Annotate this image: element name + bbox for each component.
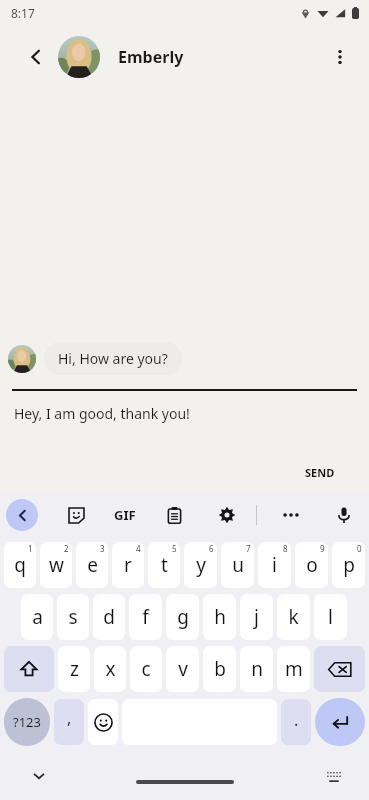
- staticText: n: [251, 656, 263, 682]
- button[interactable]: l: [314, 594, 347, 640]
- staticText: c: [141, 656, 151, 682]
- staticText: f: [142, 604, 149, 630]
- staticText: k: [288, 604, 299, 630]
- staticText: j: [254, 604, 259, 630]
- staticText: r: [124, 552, 132, 578]
- staticText: w: [49, 552, 64, 578]
- button[interactable]: z: [58, 646, 90, 692]
- button[interactable]: n: [240, 646, 273, 692]
- button[interactable]: p: [332, 542, 365, 588]
- staticText: 8: [283, 543, 288, 554]
- staticText: 7: [246, 543, 251, 554]
- button[interactable]: Back: [6, 499, 38, 531]
- button[interactable]: b: [203, 646, 236, 692]
- staticText: t: [161, 552, 168, 578]
- button[interactable]: More: [276, 500, 306, 530]
- button[interactable]: o: [295, 542, 328, 588]
- staticText: s: [68, 604, 78, 630]
- staticText: 2: [64, 543, 69, 554]
- staticText: 4: [136, 543, 141, 554]
- staticText: h: [214, 604, 226, 630]
- button[interactable]: Back: [22, 43, 50, 71]
- button[interactable]: k: [277, 594, 310, 640]
- staticText: 3: [100, 543, 105, 554]
- staticText: 9: [320, 543, 325, 554]
- staticText: z: [70, 656, 79, 682]
- staticText: o: [306, 552, 318, 578]
- staticText: l: [328, 604, 333, 630]
- staticText: b: [214, 656, 226, 682]
- button[interactable]: Change keyboard: [321, 763, 347, 789]
- button[interactable]: Backspace: [314, 646, 365, 692]
- button[interactable]: c: [130, 646, 162, 692]
- button[interactable]: w: [40, 542, 72, 588]
- staticText: y: [196, 552, 206, 578]
- button[interactable]: a: [21, 594, 53, 640]
- button[interactable]: Voice input: [329, 500, 359, 530]
- button[interactable]: h: [203, 594, 236, 640]
- button[interactable]: r: [112, 542, 144, 588]
- staticText: 1: [28, 543, 33, 554]
- button[interactable]: d: [93, 594, 125, 640]
- button[interactable]: Hey, I am good, thank you!: [14, 404, 190, 423]
- button[interactable]: .: [281, 699, 311, 745]
- staticText: e: [87, 552, 98, 578]
- button[interactable]: g: [166, 594, 199, 640]
- button[interactable]: Emberly: [118, 46, 184, 68]
- staticText: u: [232, 552, 244, 578]
- staticText: i: [272, 552, 277, 578]
- button[interactable]: e: [76, 542, 108, 588]
- staticText: 8:17: [11, 5, 35, 21]
- button[interactable]: SEND: [299, 461, 341, 484]
- staticText: ?123: [13, 713, 41, 731]
- button[interactable]: q: [4, 542, 36, 588]
- staticText: m: [285, 656, 303, 682]
- button[interactable]: t: [148, 542, 180, 588]
- button[interactable]: Enter: [315, 698, 365, 746]
- staticText: 5: [172, 543, 177, 554]
- button[interactable]: ?123: [4, 698, 50, 746]
- button[interactable]: Stickers: [61, 500, 91, 530]
- button[interactable]: x: [94, 646, 126, 692]
- button[interactable]: s: [57, 594, 89, 640]
- button[interactable]: m: [277, 646, 310, 692]
- staticText: v: [178, 656, 188, 682]
- staticText: d: [103, 604, 115, 630]
- staticText: 6: [209, 543, 214, 554]
- button[interactable]: ,: [54, 699, 84, 745]
- button[interactable]: Clipboard: [159, 500, 189, 530]
- button[interactable]: Settings: [212, 500, 242, 530]
- button[interactable]: Hide keyboard: [26, 763, 52, 789]
- staticText: g: [177, 604, 189, 630]
- button[interactable]: i: [258, 542, 291, 588]
- button[interactable]: u: [221, 542, 254, 588]
- button[interactable]: More options: [325, 42, 355, 72]
- staticText: x: [105, 656, 116, 682]
- button[interactable]: y: [184, 542, 217, 588]
- button[interactable]: j: [240, 594, 273, 640]
- staticText: ,: [67, 707, 72, 729]
- staticText: SEND: [305, 465, 335, 480]
- button[interactable]: v: [166, 646, 199, 692]
- button[interactable]: Emoji: [88, 699, 118, 745]
- staticText: .: [294, 709, 299, 731]
- staticText: a: [32, 604, 43, 630]
- staticText: Hi, How are you?: [58, 349, 168, 368]
- button[interactable]: Hi, How are you?: [44, 342, 182, 375]
- staticText: p: [343, 552, 355, 578]
- staticText: 0: [357, 543, 362, 554]
- staticText: GIF: [114, 506, 136, 524]
- button[interactable]: f: [129, 594, 162, 640]
- button[interactable]: GIF: [114, 500, 136, 530]
- button[interactable]: Shift: [4, 646, 54, 692]
- staticText: q: [14, 552, 26, 578]
